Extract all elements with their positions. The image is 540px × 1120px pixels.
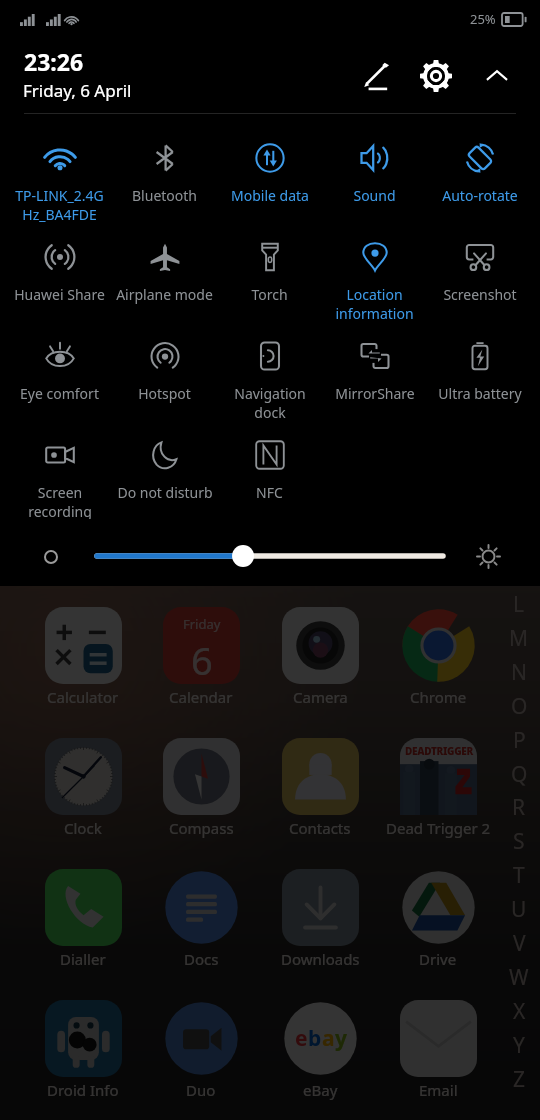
staticText: Drive	[419, 949, 457, 969]
staticText: V	[513, 929, 526, 957]
button[interactable]: Sound	[322, 123, 427, 222]
staticText: X	[513, 997, 526, 1025]
staticText: 23:26	[24, 46, 84, 77]
button[interactable]: Contacts	[261, 726, 379, 844]
staticText: b	[308, 1024, 322, 1053]
staticText: Droid Info	[47, 1080, 119, 1100]
staticText: Downloads	[281, 949, 360, 969]
staticText: Torch	[251, 285, 288, 304]
staticText: TP-LINK_2.4G Hz_BA4FDE	[15, 186, 104, 222]
staticText: 6	[191, 634, 213, 684]
staticText: P	[513, 726, 526, 754]
button[interactable]: Downloads	[261, 857, 379, 975]
button[interactable]: Chrome	[379, 595, 497, 713]
staticText: a	[322, 1024, 335, 1053]
button[interactable]: Collapse panel	[468, 47, 526, 105]
staticText: Chrome	[410, 687, 467, 707]
button[interactable]: Droid Info	[24, 988, 142, 1106]
button[interactable]: Compass	[142, 726, 260, 844]
button[interactable]: Torch	[217, 222, 322, 321]
button[interactable]: Eye comfort	[7, 321, 112, 420]
button[interactable]: Edit quick settings	[349, 47, 407, 105]
staticText: Q	[511, 760, 528, 788]
button[interactable]: Dialler	[24, 857, 142, 975]
button[interactable]	[95, 536, 445, 576]
staticText: R	[512, 793, 526, 821]
staticText: Friday	[183, 615, 221, 633]
staticText: eBay	[303, 1080, 338, 1100]
button[interactable]: Screenshot	[427, 222, 532, 321]
button[interactable]: Location information	[322, 222, 427, 321]
staticText: Location information	[335, 285, 414, 321]
staticText: Friday, 6 April	[23, 79, 132, 102]
staticText: Contacts	[289, 818, 351, 838]
staticText: Mobile data	[231, 186, 309, 205]
button[interactable]: Clock	[24, 726, 142, 844]
button[interactable]: TP-LINK_2.4G Hz_BA4FDE	[7, 123, 112, 222]
button[interactable]: Drive	[379, 857, 497, 975]
button[interactable]: Docs	[142, 857, 260, 975]
button[interactable]: Calculator	[24, 595, 142, 713]
button[interactable]: Settings	[407, 47, 465, 105]
button[interactable]: Email	[379, 988, 497, 1106]
button[interactable]: Auto-rotate	[427, 123, 532, 222]
staticText: Screenshot	[443, 285, 517, 304]
staticText: Dialler	[60, 949, 106, 969]
staticText: Dead Trigger 2	[386, 818, 491, 838]
staticText: Sound	[353, 186, 396, 205]
button[interactable]: Duo	[142, 988, 260, 1106]
button[interactable]: Auto brightness	[34, 540, 67, 573]
staticText: Auto-rotate	[442, 186, 518, 205]
staticText: U	[511, 895, 527, 923]
staticText: DEADTRIGGER	[405, 744, 473, 758]
button[interactable]: DEADTRIGGER	[379, 726, 497, 844]
staticText: Calendar	[169, 687, 233, 707]
staticText: S	[513, 827, 525, 855]
staticText: MirrorShare	[335, 384, 415, 403]
staticText: M	[509, 624, 529, 652]
staticText: Clock	[64, 818, 102, 838]
staticText: Y	[513, 1031, 525, 1059]
staticText: Duo	[186, 1080, 216, 1100]
button[interactable]: Navigation dock	[217, 321, 322, 420]
staticText: NFC	[256, 483, 283, 502]
staticText: Z	[513, 1065, 526, 1093]
staticText: Airplane mode	[116, 285, 213, 304]
button[interactable]: Brightness	[470, 538, 507, 575]
button[interactable]: MirrorShare	[322, 321, 427, 420]
button[interactable]: Bluetooth	[112, 123, 217, 222]
staticText: Ultra battery	[438, 384, 522, 403]
button[interactable]: Friday	[142, 595, 260, 713]
staticText: Navigation dock	[234, 384, 306, 420]
staticText: Compass	[169, 818, 234, 838]
button[interactable]: Ultra battery	[427, 321, 532, 420]
staticText: Camera	[293, 687, 348, 707]
button[interactable]: NFC	[217, 420, 322, 519]
staticText: Screen recording	[28, 483, 92, 519]
staticText: Bluetooth	[132, 186, 197, 205]
button[interactable]: Airplane mode	[112, 222, 217, 321]
staticText: Do not disturb	[117, 483, 213, 502]
staticText: W	[509, 963, 529, 991]
staticText: Huawei Share	[14, 285, 105, 304]
staticText: 25%	[470, 10, 496, 28]
staticText: Calculator	[47, 687, 119, 707]
staticText: Eye comfort	[20, 384, 99, 403]
staticText: L	[513, 590, 525, 618]
button[interactable]: Hotspot	[112, 321, 217, 420]
staticText: Email	[419, 1080, 458, 1100]
staticText: O	[511, 692, 528, 720]
staticText: e	[295, 1024, 308, 1053]
staticText: y	[335, 1024, 347, 1053]
button[interactable]: Do not disturb	[112, 420, 217, 519]
button[interactable]: Huawei Share	[7, 222, 112, 321]
staticText: Docs	[184, 949, 219, 969]
button[interactable]: Screen recording	[7, 420, 112, 519]
staticText: T	[513, 861, 525, 889]
button[interactable]: Camera	[261, 595, 379, 713]
staticText: Hotspot	[138, 384, 191, 403]
button[interactable]: e	[261, 988, 379, 1106]
staticText: N	[511, 658, 527, 686]
button[interactable]: Mobile data	[217, 123, 322, 222]
